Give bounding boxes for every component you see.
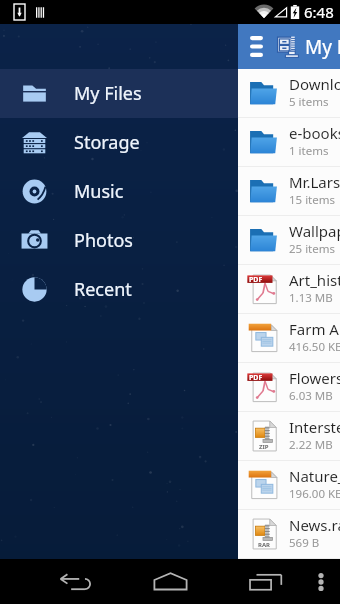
button[interactable]: PDF [238,265,340,314]
staticText: 2.22 MB [289,437,333,453]
staticText: 569 B [289,535,320,551]
button[interactable]: Photos [0,216,238,265]
staticText: Flowers.pdf [289,368,340,388]
staticText: Interstellar.zip [289,417,340,437]
staticText: 15 items [289,192,336,208]
button[interactable]: Open navigation drawer [246,36,267,57]
staticText: 196.00 KB [289,486,340,502]
staticText: 6.03 MB [289,388,333,404]
staticText: Downloads [289,74,340,94]
staticText: My Files [305,34,340,60]
staticText: 25 items [289,241,336,257]
staticText: PDF [249,275,263,285]
staticText: 1.13 MB [289,290,333,306]
button[interactable]: Recent [0,265,238,314]
button[interactable]: Farm Animals.ppt [238,314,340,363]
staticText: RAR [258,541,271,549]
button[interactable]: Home [122,559,218,604]
button[interactable]: RAR [238,510,340,559]
staticText: PDF [249,373,263,383]
button[interactable]: Nature_pics.ppt [238,461,340,510]
button[interactable]: Mr.Larson [238,167,340,216]
button[interactable]: My Files [0,69,238,118]
staticText: 1 items [289,143,329,159]
staticText: Photos [74,228,133,253]
staticText: My Files [74,81,142,106]
staticText: News.rar [289,515,340,535]
staticText: 6:48 [304,2,334,22]
button[interactable]: e-books [238,118,340,167]
staticText: 5 items [289,94,329,110]
staticText: ZIP [259,443,269,451]
button[interactable]: ZIP [238,412,340,461]
staticText: Storage [74,130,140,155]
staticText: e-books [289,123,340,143]
staticText: 416.50 KB [289,339,340,355]
staticText: Recent [74,277,132,302]
button[interactable]: Music [0,167,238,216]
button[interactable]: Storage [0,118,238,167]
staticText: Nature_pics.ppt [289,466,340,486]
button[interactable]: Wallpapers [238,216,340,265]
button[interactable]: More options [301,559,340,604]
staticText: Music [74,179,124,204]
button[interactable]: Downloads [238,69,340,118]
button[interactable]: PDF [238,363,340,412]
button[interactable]: Recents [218,559,314,604]
staticText: Art_history.pdf [289,270,340,290]
staticText: Farm Animals.ppt [289,319,340,339]
staticText: Mr.Larson [289,172,340,192]
staticText: Wallpapers [289,221,340,241]
button[interactable]: Back [27,559,123,604]
